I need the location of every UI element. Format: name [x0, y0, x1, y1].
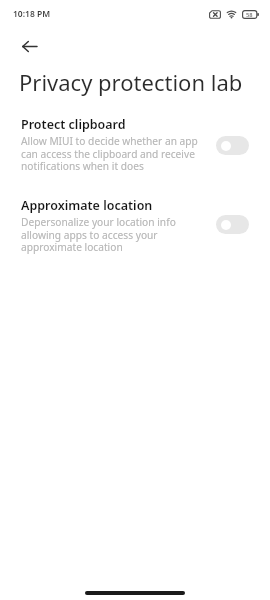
staticText: Approximate location [21, 197, 153, 214]
staticText: Protect clipboard [21, 116, 126, 133]
staticText: 58 [246, 11, 253, 19]
staticText: Privacy protection lab [19, 67, 243, 97]
staticText: 10:18 PM [13, 8, 51, 20]
button[interactable]: Protect clipboard [0, 112, 270, 176]
button[interactable]: Approximate location [0, 193, 270, 257]
staticText: Allow MIUI to decide whether an app can … [21, 134, 198, 173]
button[interactable]: Toggle [216, 136, 249, 155]
button[interactable]: Toggle [216, 215, 249, 234]
staticText: Depersonalize your location info allowin… [21, 215, 176, 254]
button[interactable]: Back [14, 31, 44, 61]
